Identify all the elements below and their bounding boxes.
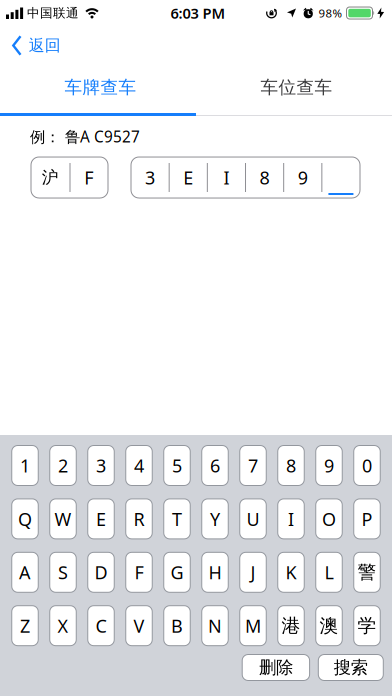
button[interactable]: X bbox=[50, 606, 76, 646]
button[interactable]: O bbox=[316, 499, 342, 539]
staticText: Q bbox=[18, 507, 32, 531]
staticText: P bbox=[361, 507, 372, 531]
staticText: 车牌查车 bbox=[64, 76, 136, 99]
staticText: 5 bbox=[172, 453, 182, 478]
staticText: I bbox=[288, 507, 294, 531]
button[interactable]: 港 bbox=[278, 606, 304, 646]
button[interactable]: 9 bbox=[316, 445, 342, 485]
staticText: S bbox=[58, 560, 68, 584]
button[interactable]: 0 bbox=[354, 445, 380, 485]
button[interactable]: 1 bbox=[12, 445, 38, 485]
staticText: 98% bbox=[318, 5, 342, 21]
staticText: 学 bbox=[357, 614, 376, 637]
button[interactable]: L bbox=[316, 552, 342, 592]
button[interactable]: 删除 bbox=[242, 654, 310, 680]
staticText: 3 bbox=[96, 453, 106, 478]
staticText: 9 bbox=[324, 453, 334, 478]
button[interactable]: P bbox=[354, 499, 380, 539]
staticText: T bbox=[172, 507, 182, 531]
button[interactable]: M bbox=[240, 606, 266, 646]
staticText: 6 bbox=[210, 453, 220, 478]
button[interactable]: K bbox=[278, 552, 304, 592]
staticText: B bbox=[171, 613, 183, 638]
staticText: 8 bbox=[286, 453, 296, 478]
staticText: N bbox=[208, 613, 222, 638]
button[interactable]: D bbox=[88, 552, 114, 592]
staticText: Z bbox=[20, 613, 30, 638]
staticText: E bbox=[96, 507, 106, 531]
button[interactable]: R bbox=[126, 499, 152, 539]
staticText: D bbox=[94, 560, 107, 584]
button[interactable]: E bbox=[88, 499, 114, 539]
button[interactable]: 6 bbox=[202, 445, 228, 485]
staticText: 1 bbox=[20, 453, 30, 478]
staticText: G bbox=[170, 560, 183, 584]
button[interactable]: S bbox=[50, 552, 76, 592]
staticText: 4 bbox=[134, 453, 144, 478]
button[interactable]: W bbox=[50, 499, 76, 539]
button[interactable]: Z bbox=[12, 606, 38, 646]
button[interactable]: N bbox=[202, 606, 228, 646]
staticText: 7 bbox=[248, 453, 258, 478]
button[interactable]: 车位查车 bbox=[198, 62, 392, 113]
button[interactable]: 澳 bbox=[316, 606, 342, 646]
button[interactable]: V bbox=[126, 606, 152, 646]
staticText: 3 bbox=[145, 165, 155, 190]
button[interactable]: 5 bbox=[164, 445, 190, 485]
staticText: H bbox=[208, 560, 221, 584]
staticText: J bbox=[250, 560, 255, 584]
staticText: Y bbox=[210, 507, 220, 531]
button[interactable]: T bbox=[164, 499, 190, 539]
staticText: 沪 bbox=[42, 167, 59, 188]
staticText: K bbox=[285, 560, 296, 584]
button[interactable]: 车牌查车 bbox=[2, 62, 198, 113]
staticText: 车位查车 bbox=[260, 76, 332, 99]
staticText: C bbox=[95, 613, 106, 638]
button[interactable]: 返回 bbox=[0, 34, 69, 54]
button[interactable]: 3 bbox=[88, 445, 114, 485]
staticText: O bbox=[322, 507, 336, 531]
staticText: 8 bbox=[260, 165, 270, 190]
button[interactable]: 7 bbox=[240, 445, 266, 485]
button[interactable]: G bbox=[164, 552, 190, 592]
staticText: 6:03 PM bbox=[170, 3, 225, 23]
button[interactable]: B bbox=[164, 606, 190, 646]
staticText: 返回 bbox=[29, 35, 61, 55]
staticText: F bbox=[84, 165, 93, 190]
button[interactable]: Y bbox=[202, 499, 228, 539]
button[interactable]: 8 bbox=[278, 445, 304, 485]
button[interactable]: 4 bbox=[126, 445, 152, 485]
button[interactable]: F bbox=[126, 552, 152, 592]
staticText: A bbox=[19, 560, 31, 584]
staticText: 中国联通 bbox=[27, 5, 79, 21]
button[interactable]: 搜索 bbox=[318, 654, 383, 680]
staticText: E bbox=[183, 165, 193, 190]
staticText: 9 bbox=[298, 165, 308, 190]
staticText: R bbox=[133, 507, 144, 531]
button[interactable]: C bbox=[88, 606, 114, 646]
staticText: L bbox=[324, 560, 333, 584]
staticText: 澳 bbox=[319, 614, 338, 637]
button[interactable]: I bbox=[278, 499, 304, 539]
staticText: F bbox=[134, 560, 143, 584]
button[interactable]: A bbox=[12, 552, 38, 592]
staticText: I bbox=[223, 165, 229, 190]
button[interactable]: J bbox=[240, 552, 266, 592]
staticText: 港 bbox=[281, 614, 300, 637]
staticText: 2 bbox=[58, 453, 68, 478]
staticText: 搜索 bbox=[334, 657, 368, 678]
button[interactable]: H bbox=[202, 552, 228, 592]
staticText: W bbox=[54, 507, 71, 531]
staticText: V bbox=[133, 613, 144, 638]
staticText: 警 bbox=[357, 560, 376, 584]
staticText: U bbox=[246, 507, 259, 531]
staticText: M bbox=[245, 613, 261, 638]
staticText: 删除 bbox=[259, 657, 293, 678]
staticText: X bbox=[57, 613, 68, 638]
button[interactable]: U bbox=[240, 499, 266, 539]
button[interactable]: Q bbox=[12, 499, 38, 539]
button[interactable]: 学 bbox=[354, 606, 380, 646]
staticText: 例： 鲁A C9527 bbox=[30, 126, 140, 147]
button[interactable]: 警 bbox=[354, 552, 380, 592]
button[interactable]: 2 bbox=[50, 445, 76, 485]
